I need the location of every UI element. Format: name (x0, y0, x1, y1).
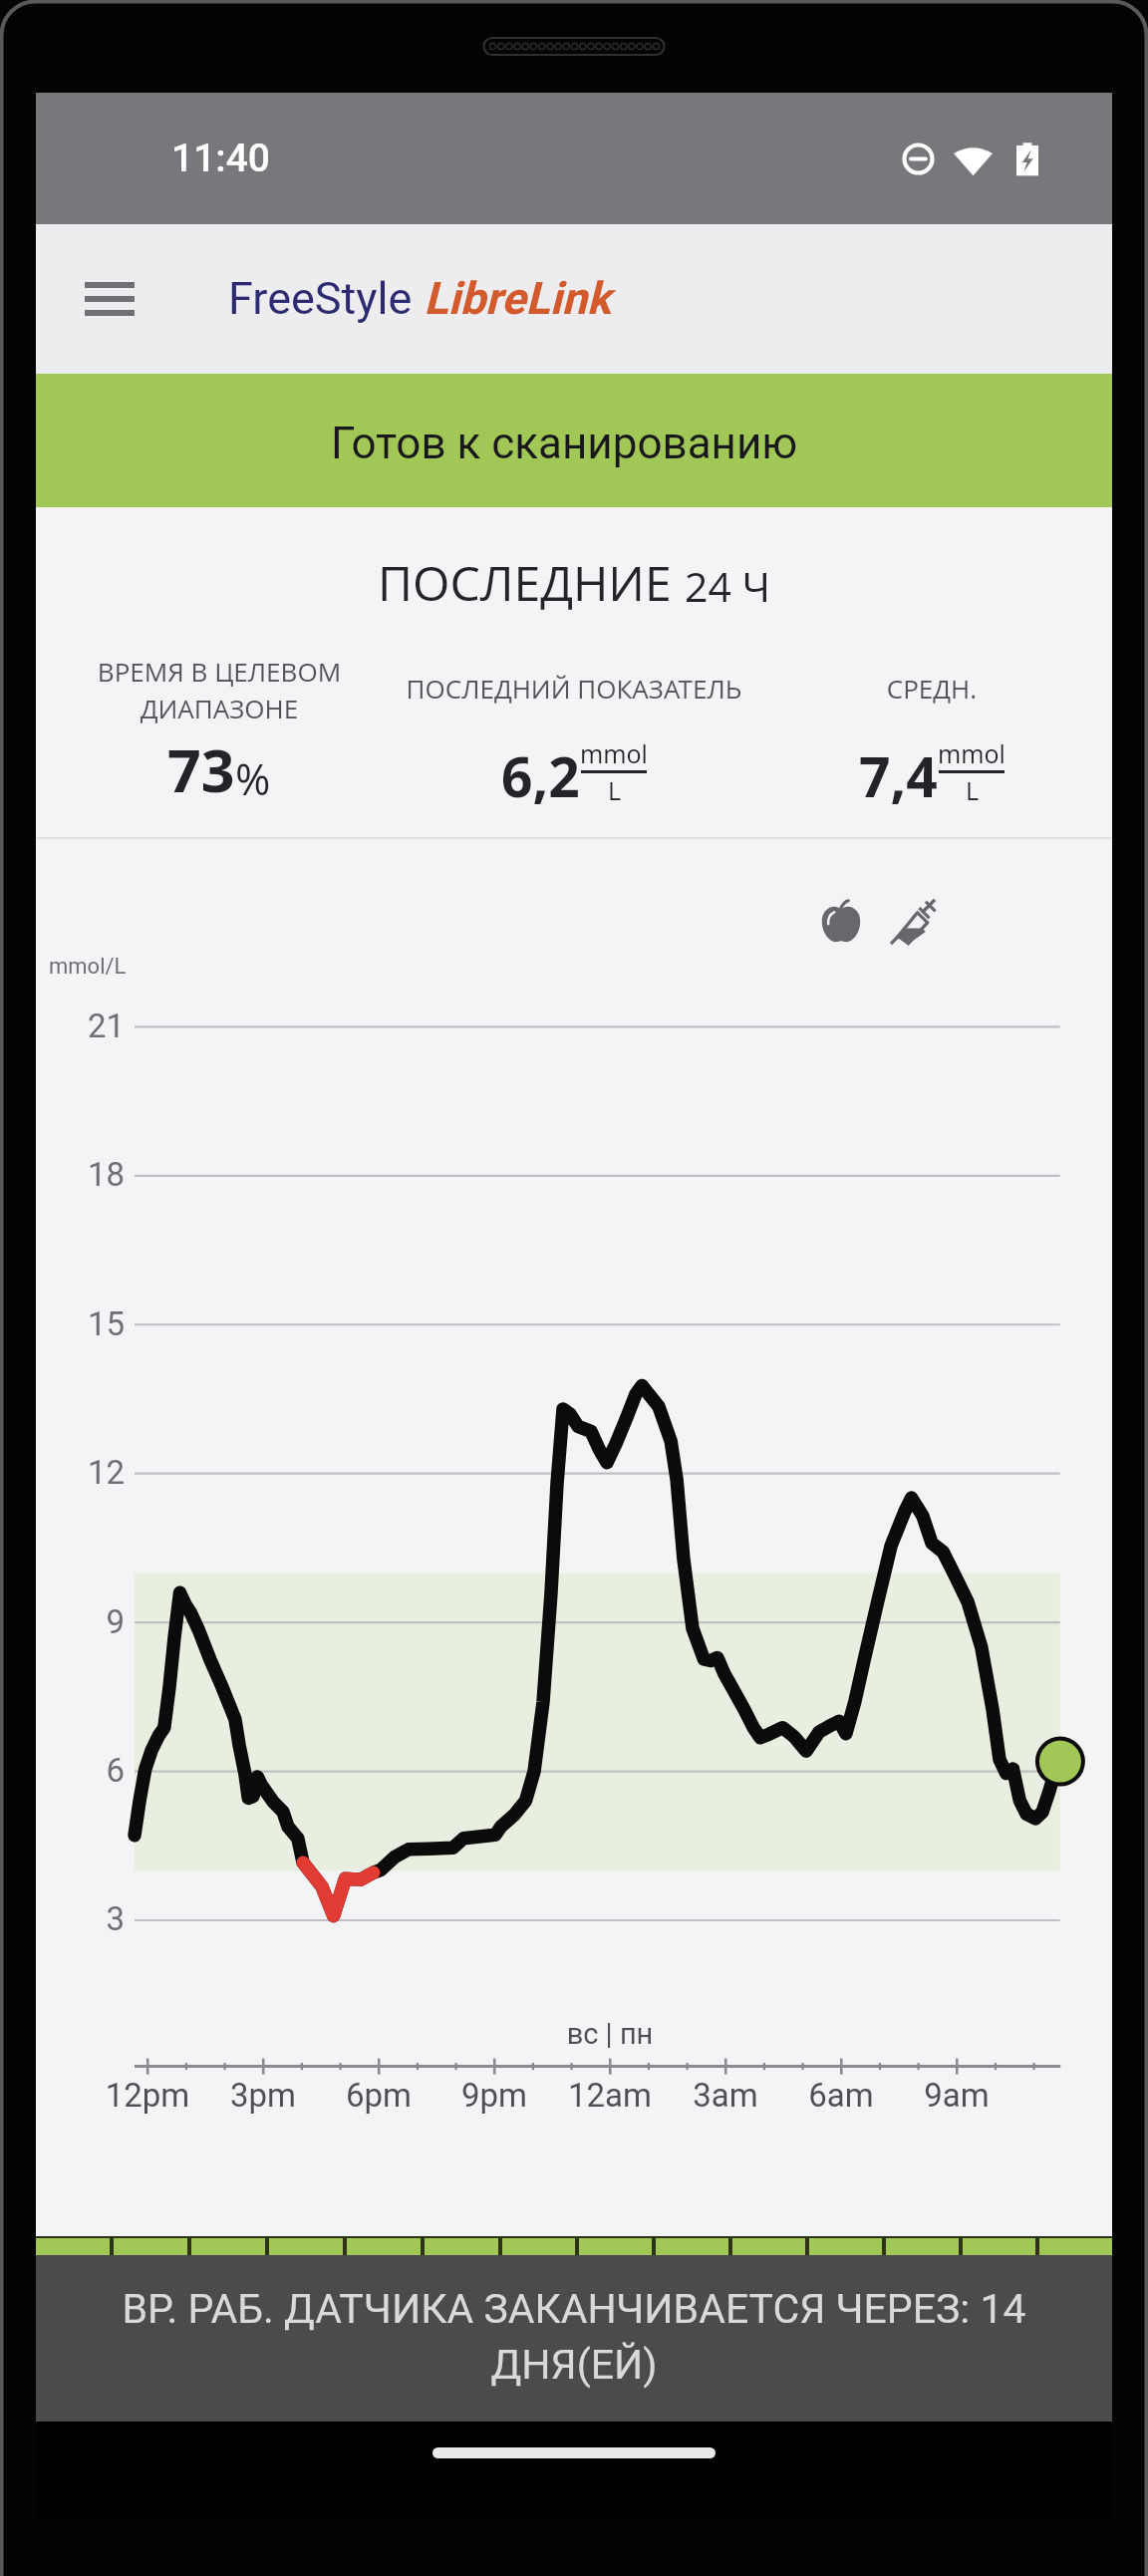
staticText: 18 (25, 1155, 125, 1194)
staticText: ВР. РАБ. ДАТЧИКА ЗАКАНЧИВАЕТСЯ ЧЕРЕЗ: 14… (70, 2285, 1078, 2389)
button[interactable]: Open navigation menu (77, 259, 143, 339)
button[interactable]: Insulin log (880, 889, 946, 955)
staticText: СРЕДН. (683, 671, 1148, 706)
staticText: L (608, 773, 621, 807)
staticText: 12pm (78, 2076, 217, 2115)
button[interactable]: Food log (808, 889, 874, 955)
staticText: ПОСЛЕДНИЕ (378, 550, 685, 615)
staticText: 7,4 (859, 738, 938, 813)
staticText: 11:40 (171, 136, 271, 181)
button[interactable]: Готов к сканированию (36, 374, 1112, 507)
staticText: mmol (580, 736, 648, 770)
staticText: 15 (25, 1304, 125, 1343)
staticText: mmol/L (49, 954, 127, 980)
staticText: 6am (771, 2076, 911, 2115)
button[interactable]: Home (432, 2447, 716, 2458)
staticText: 9 (25, 1602, 125, 1641)
staticText: FreeStyle (228, 272, 413, 325)
staticText: 9pm (425, 2076, 564, 2115)
button[interactable]: Glucose graph, last 24 hours (135, 957, 1060, 2127)
staticText: ПОСЛЕДНИЙ ПОКАЗАТЕЛЬ (325, 671, 823, 706)
staticText: L (966, 773, 979, 807)
staticText: mmol (938, 736, 1005, 770)
staticText: 3 (25, 1899, 125, 1938)
staticText: 9am (887, 2076, 1026, 2115)
staticText: 21 (25, 1006, 125, 1045)
staticText: 24 Ч (685, 558, 771, 614)
staticText: 6 (25, 1751, 125, 1790)
staticText: LibreLink (413, 272, 611, 325)
staticText: 3am (656, 2076, 795, 2115)
staticText: Готов к сканированию (331, 418, 798, 469)
staticText: 6pm (309, 2076, 448, 2115)
staticText: 6,2 (501, 738, 580, 813)
staticText: ВРЕМЯ В ЦЕЛЕВОМ ДИАПАЗОНЕ (0, 654, 468, 726)
button[interactable]: ВР. РАБ. ДАТЧИКА ЗАКАНЧИВАЕТСЯ ЧЕРЕЗ: 14… (36, 2255, 1112, 2422)
staticText: % (235, 749, 271, 808)
staticText: 3pm (193, 2076, 333, 2115)
staticText: 73 (167, 729, 235, 809)
staticText: 12am (540, 2076, 680, 2115)
staticText: 12 (25, 1453, 125, 1492)
staticText: вс | пн (540, 2017, 680, 2051)
